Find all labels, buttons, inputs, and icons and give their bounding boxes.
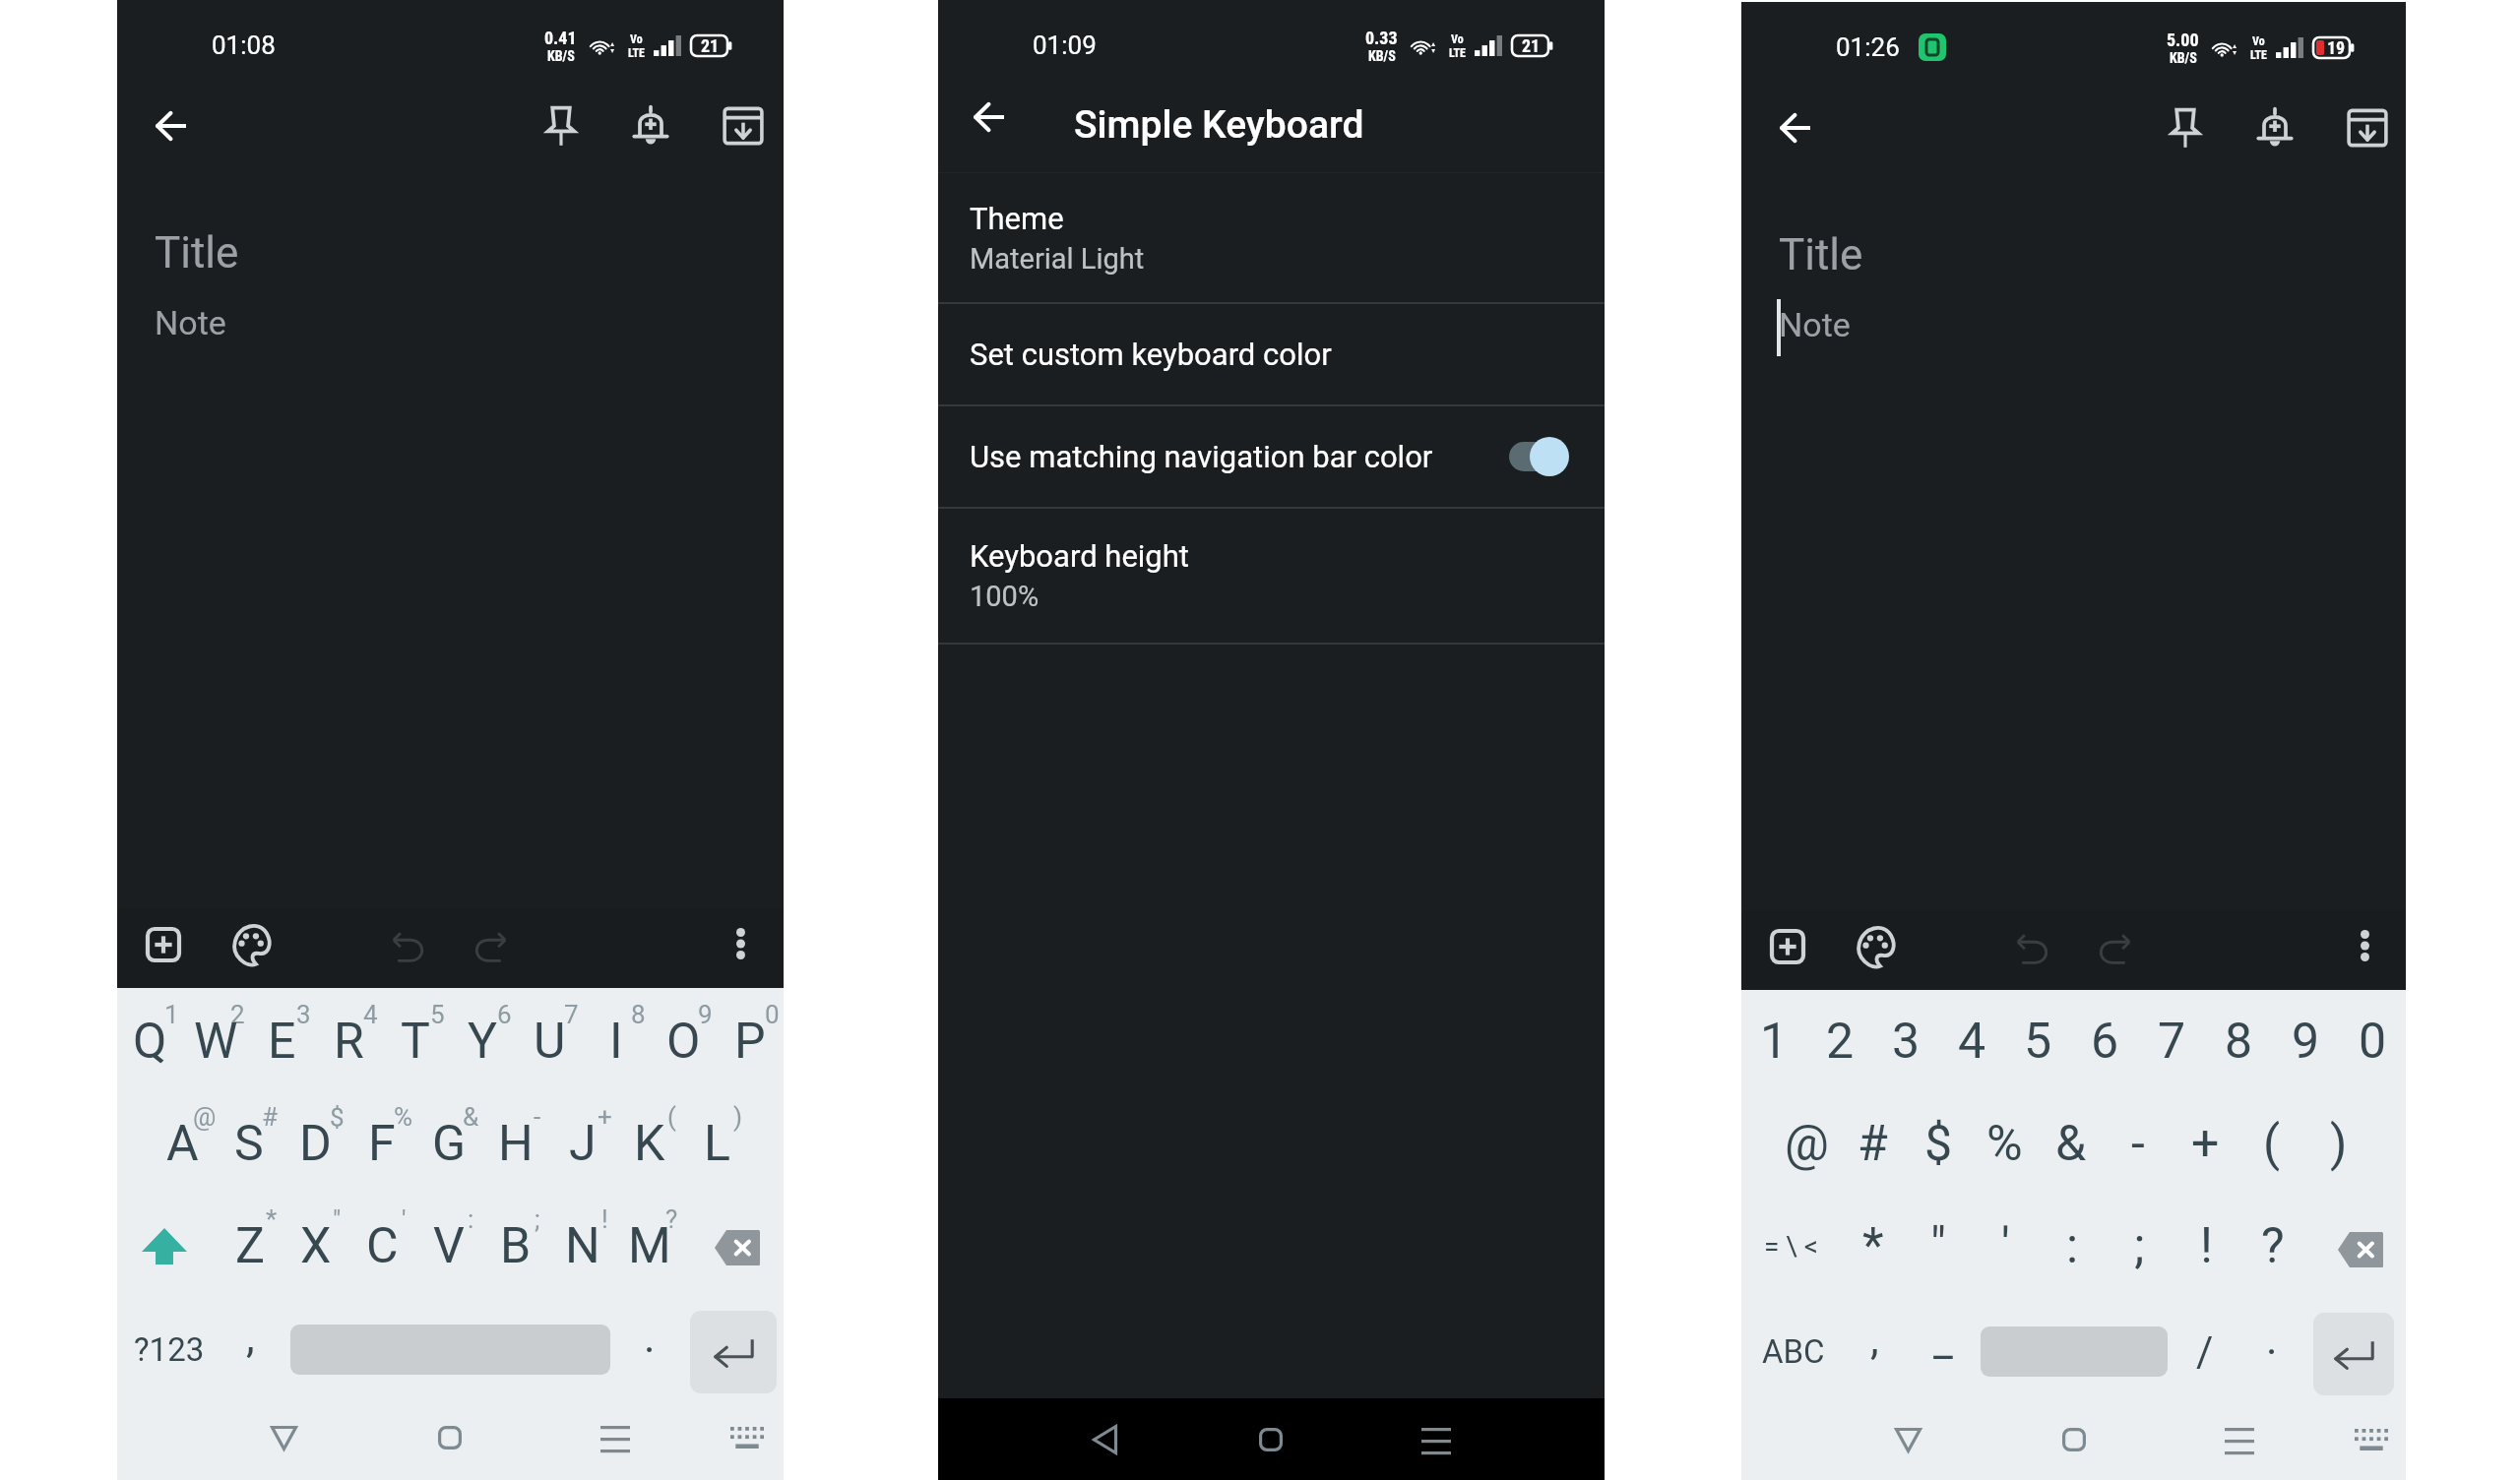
button[interactable]: /: [2171, 1297, 2239, 1405]
button[interactable]: ?123: [115, 1295, 223, 1403]
button[interactable]: Recents: [2205, 1405, 2274, 1474]
button[interactable]: ;: [2106, 1195, 2173, 1297]
button[interactable]: $: [282, 1090, 348, 1193]
button[interactable]: Back: [138, 92, 205, 159]
button[interactable]: .: [615, 1295, 684, 1403]
button[interactable]: Color palette: [1848, 923, 1903, 978]
button[interactable]: 6: [449, 988, 516, 1090]
button[interactable]: 4: [315, 988, 382, 1090]
button[interactable]: ?: [616, 1193, 683, 1295]
button[interactable]: 6: [2071, 990, 2138, 1092]
button[interactable]: 5: [382, 988, 449, 1090]
button[interactable]: 7: [516, 988, 583, 1090]
button[interactable]: 1: [1741, 990, 1807, 1092]
button[interactable]: Backspace: [683, 1193, 784, 1295]
button[interactable]: Shift: [117, 1193, 217, 1295]
button[interactable]: ): [683, 1090, 750, 1193]
button[interactable]: -: [482, 1090, 549, 1193]
button[interactable]: &: [2038, 1092, 2105, 1195]
button[interactable]: :: [415, 1193, 482, 1295]
button[interactable]: (: [2238, 1092, 2305, 1195]
button[interactable]: 3: [249, 988, 315, 1090]
button[interactable]: ?: [2239, 1195, 2306, 1297]
button[interactable]: %: [1972, 1092, 2038, 1195]
button[interactable]: Enter: [690, 1311, 777, 1393]
button[interactable]: More options: [713, 921, 768, 976]
button[interactable]: :: [2039, 1195, 2106, 1297]
button[interactable]: ABC: [1739, 1297, 1848, 1405]
button[interactable]: Enter: [2313, 1313, 2394, 1395]
button[interactable]: 7: [2138, 990, 2205, 1092]
button[interactable]: @: [150, 1090, 216, 1193]
button[interactable]: Space: [1981, 1326, 2168, 1377]
button[interactable]: %: [348, 1090, 415, 1193]
button[interactable]: = \ <: [1741, 1195, 1840, 1297]
button[interactable]: Switch keyboard: [713, 1403, 782, 1472]
button[interactable]: Add: [1760, 923, 1815, 978]
button[interactable]: #: [216, 1090, 282, 1193]
button[interactable]: Undo: [379, 921, 434, 976]
button[interactable]: Home: [415, 1403, 484, 1472]
button[interactable]: Back: [1070, 1405, 1139, 1474]
button[interactable]: ": [1906, 1195, 1972, 1297]
button[interactable]: ,: [1840, 1297, 1909, 1405]
button[interactable]: !: [2173, 1195, 2239, 1297]
button[interactable]: Hide keyboard: [1873, 1405, 1942, 1474]
button[interactable]: (: [616, 1090, 683, 1193]
button[interactable]: -: [2105, 1092, 2172, 1195]
button[interactable]: 8: [583, 988, 650, 1090]
button[interactable]: More options: [2337, 923, 2392, 978]
button[interactable]: Pin: [528, 92, 595, 159]
button[interactable]: Add reminder: [617, 92, 684, 159]
button[interactable]: Recents: [1402, 1405, 1471, 1474]
button[interactable]: $: [1906, 1092, 1972, 1195]
button[interactable]: Archive: [710, 92, 777, 159]
button[interactable]: #: [1840, 1092, 1906, 1195]
button[interactable]: Undo: [2003, 923, 2058, 978]
button[interactable]: 9: [2272, 990, 2339, 1092]
button[interactable]: @: [1774, 1092, 1840, 1195]
button[interactable]: ,: [216, 1295, 284, 1403]
button[interactable]: Back: [1762, 94, 1829, 161]
button[interactable]: 1: [117, 988, 183, 1090]
button[interactable]: Switch keyboard: [2337, 1405, 2406, 1474]
button[interactable]: Hide keyboard: [249, 1403, 318, 1472]
button[interactable]: 2: [183, 988, 249, 1090]
button[interactable]: 2: [1807, 990, 1873, 1092]
button[interactable]: Home: [2040, 1405, 2109, 1474]
button[interactable]: ): [2305, 1092, 2372, 1195]
button[interactable]: !: [549, 1193, 616, 1295]
button[interactable]: +: [549, 1090, 616, 1193]
button[interactable]: Redo: [2089, 923, 2144, 978]
button[interactable]: Color palette: [223, 921, 279, 976]
button[interactable]: Add: [136, 921, 191, 976]
button[interactable]: Back: [956, 84, 1023, 151]
button[interactable]: *: [217, 1193, 283, 1295]
button[interactable]: 0: [2339, 990, 2406, 1092]
button[interactable]: &: [415, 1090, 482, 1193]
button[interactable]: ': [1972, 1195, 2039, 1297]
button[interactable]: Set custom keyboard color: [938, 304, 1605, 404]
button[interactable]: Add reminder: [2241, 94, 2308, 161]
button[interactable]: .: [2237, 1297, 2306, 1405]
button[interactable]: Recents: [581, 1403, 650, 1472]
button[interactable]: ": [283, 1193, 348, 1295]
button[interactable]: Backspace: [2306, 1195, 2406, 1297]
button[interactable]: Use matching navigation bar color: [938, 406, 1605, 507]
button[interactable]: ': [348, 1193, 415, 1295]
button[interactable]: Theme: [938, 173, 1605, 302]
button[interactable]: Redo: [465, 921, 520, 976]
button[interactable]: Home: [1236, 1405, 1305, 1474]
button[interactable]: 9: [650, 988, 717, 1090]
button[interactable]: +: [2172, 1092, 2238, 1195]
button[interactable]: Keyboard height: [938, 509, 1605, 643]
button[interactable]: 5: [2005, 990, 2071, 1092]
button[interactable]: 0: [717, 988, 784, 1090]
button[interactable]: _: [1909, 1297, 1978, 1405]
button[interactable]: Archive: [2334, 94, 2401, 161]
button[interactable]: Pin: [2152, 94, 2219, 161]
button[interactable]: 4: [1939, 990, 2005, 1092]
button[interactable]: 8: [2205, 990, 2272, 1092]
button[interactable]: 3: [1873, 990, 1939, 1092]
